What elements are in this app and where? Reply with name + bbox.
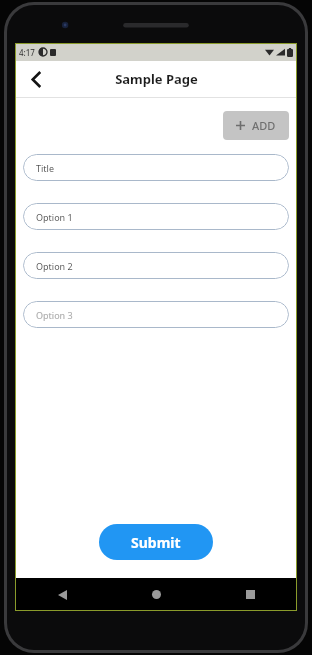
button[interactable]: Option 3 xyxy=(23,301,289,328)
staticText: ADD xyxy=(252,118,276,133)
staticText: Option 3 xyxy=(36,309,73,321)
button[interactable]: Back xyxy=(21,64,51,94)
button[interactable]: Recent apps xyxy=(203,578,297,611)
button[interactable]: Submit xyxy=(99,524,213,560)
staticText: Sample Page xyxy=(115,70,198,88)
button[interactable]: Option 1 xyxy=(23,203,289,230)
staticText: Title xyxy=(36,162,54,174)
staticText: Option 2 xyxy=(36,260,73,272)
staticText: Option 1 xyxy=(36,211,73,223)
staticText: 4:17 xyxy=(19,47,35,58)
button[interactable]: Back xyxy=(15,578,109,611)
staticText: Submit xyxy=(131,533,181,552)
button[interactable]: ADD xyxy=(223,111,289,140)
button[interactable]: Title xyxy=(23,154,289,181)
button[interactable]: Home xyxy=(109,578,203,611)
button[interactable]: Option 2 xyxy=(23,252,289,279)
